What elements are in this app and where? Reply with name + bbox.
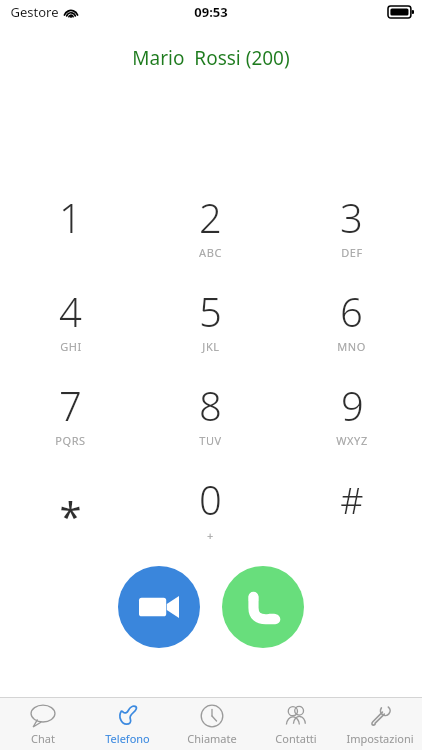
button[interactable]: 1 — [0, 186, 140, 280]
button[interactable]: Chiamate — [170, 698, 254, 750]
button[interactable]: 7 — [0, 374, 140, 468]
staticText: 09:53 — [194, 3, 228, 21]
button[interactable]: Chat — [0, 698, 85, 750]
button[interactable]: 0 — [140, 468, 281, 562]
staticText: + — [207, 528, 214, 543]
staticText: 6 — [340, 284, 363, 338]
staticText: 9 — [341, 378, 364, 432]
button[interactable]: Call — [222, 566, 304, 648]
button[interactable]: Telefono — [85, 698, 170, 750]
button[interactable]: 9 — [281, 374, 422, 468]
staticText: Mario Rossi (200) — [132, 45, 290, 71]
staticText: MNO — [337, 339, 366, 354]
staticText: 7 — [59, 378, 82, 432]
staticText: # — [340, 476, 364, 525]
button[interactable]: 5 — [140, 280, 281, 374]
staticText: PQRS — [55, 433, 86, 448]
button[interactable]: 6 — [281, 280, 422, 374]
staticText: 5 — [199, 284, 222, 338]
staticText: Impostazioni — [346, 731, 414, 746]
button[interactable]: 4 — [0, 280, 140, 374]
button[interactable]: 3 — [281, 186, 422, 280]
staticText: 4 — [59, 284, 82, 338]
staticText: Gestore — [10, 3, 59, 21]
staticText: 3 — [340, 190, 363, 244]
staticText: 0 — [199, 472, 222, 526]
staticText: WXYZ — [336, 433, 368, 448]
staticText: * — [59, 488, 82, 542]
staticText: 2 — [199, 190, 222, 244]
button[interactable]: * — [0, 468, 140, 562]
staticText: Contatti — [275, 731, 317, 746]
staticText: 8 — [199, 378, 222, 432]
staticText: JKL — [202, 339, 220, 354]
button[interactable]: Contatti — [254, 698, 338, 750]
button[interactable]: # — [281, 468, 422, 562]
staticText: ABC — [199, 245, 222, 260]
staticText: Chat — [31, 731, 55, 746]
staticText: Telefono — [105, 731, 150, 746]
staticText: TUV — [199, 433, 222, 448]
staticText: GHI — [60, 339, 82, 354]
button[interactable]: 8 — [140, 374, 281, 468]
button[interactable]: Impostazioni — [338, 698, 422, 750]
staticText: 1 — [59, 190, 82, 244]
button[interactable]: 2 — [140, 186, 281, 280]
staticText: DEF — [341, 245, 363, 260]
button[interactable]: Video call — [118, 566, 200, 648]
staticText: Chiamate — [187, 731, 237, 746]
